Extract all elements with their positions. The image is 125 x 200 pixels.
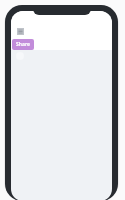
button[interactable]: Menu: [17, 28, 24, 35]
button[interactable]: Share: [12, 39, 34, 50]
staticText: Share: [16, 41, 30, 48]
